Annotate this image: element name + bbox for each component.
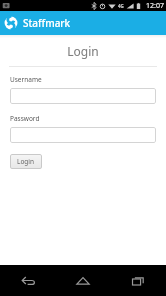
button[interactable]: Login	[10, 154, 42, 169]
button[interactable]	[10, 88, 156, 104]
button[interactable]: Recent apps	[120, 265, 156, 296]
button[interactable]: Back	[10, 265, 46, 296]
staticText: Password	[10, 114, 40, 123]
button[interactable]: Staffmark	[0, 11, 166, 35]
button[interactable]	[10, 127, 156, 143]
staticText: Login	[17, 157, 35, 166]
staticText: 4G	[118, 3, 124, 9]
staticText: Username	[10, 75, 42, 84]
staticText: Login	[0, 43, 166, 59]
button[interactable]: Home	[65, 265, 101, 296]
staticText: Staffmark	[23, 16, 71, 30]
staticText: 12:07	[146, 1, 164, 11]
